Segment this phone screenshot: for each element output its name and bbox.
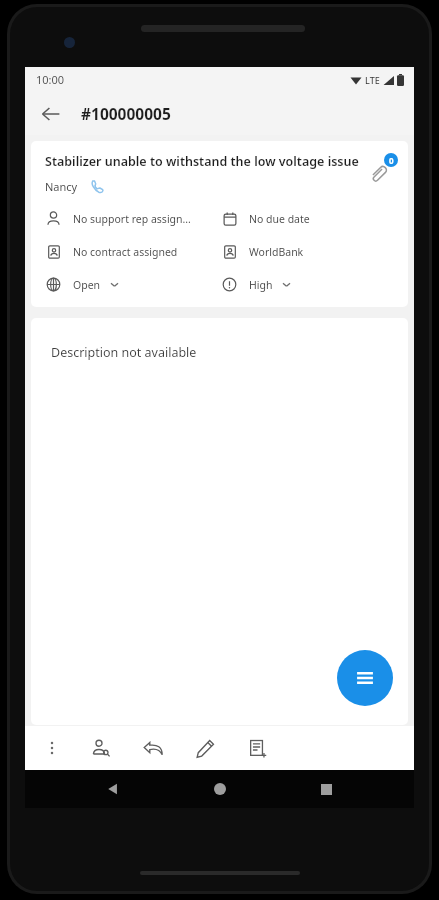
button[interactable]: WorldBank	[221, 243, 398, 260]
button[interactable]: Attachments	[368, 153, 398, 183]
button[interactable]: Add note	[237, 728, 277, 768]
staticText: High	[249, 278, 273, 292]
button[interactable]: Call Nancy	[89, 178, 105, 194]
staticText: #100000005	[81, 103, 171, 124]
button[interactable]: Description not available	[31, 318, 408, 725]
button[interactable]: Reply	[133, 728, 173, 768]
staticText: No due date	[249, 212, 310, 226]
button[interactable]: No support rep assign…	[45, 210, 221, 227]
staticText: 0	[389, 155, 394, 166]
button[interactable]: High	[221, 276, 398, 293]
button[interactable]: Stabilizer unable to withstand the low v…	[31, 141, 408, 307]
button[interactable]: Menu actions	[337, 650, 393, 706]
button[interactable]: More options	[37, 733, 67, 763]
button[interactable]: Back	[31, 94, 71, 134]
staticText: No contract assigned	[73, 245, 178, 259]
staticText: Description not available	[51, 344, 197, 361]
button[interactable]: Back	[95, 771, 131, 807]
staticText: 10:00	[36, 72, 65, 87]
staticText: Open	[73, 278, 101, 292]
staticText: Stabilizer unable to withstand the low v…	[45, 153, 359, 170]
staticText: WorldBank	[249, 245, 304, 259]
button[interactable]: Open	[45, 276, 221, 293]
button[interactable]: Home	[202, 771, 238, 807]
button[interactable]: Assign	[81, 728, 121, 768]
staticText: Nancy	[45, 179, 78, 194]
button[interactable]: No due date	[221, 210, 398, 227]
button[interactable]: Edit	[185, 728, 225, 768]
staticText: No support rep assign…	[73, 212, 191, 226]
button[interactable]: No contract assigned	[45, 243, 221, 260]
button[interactable]: Recents	[308, 771, 344, 807]
staticText: LTE	[365, 74, 380, 86]
